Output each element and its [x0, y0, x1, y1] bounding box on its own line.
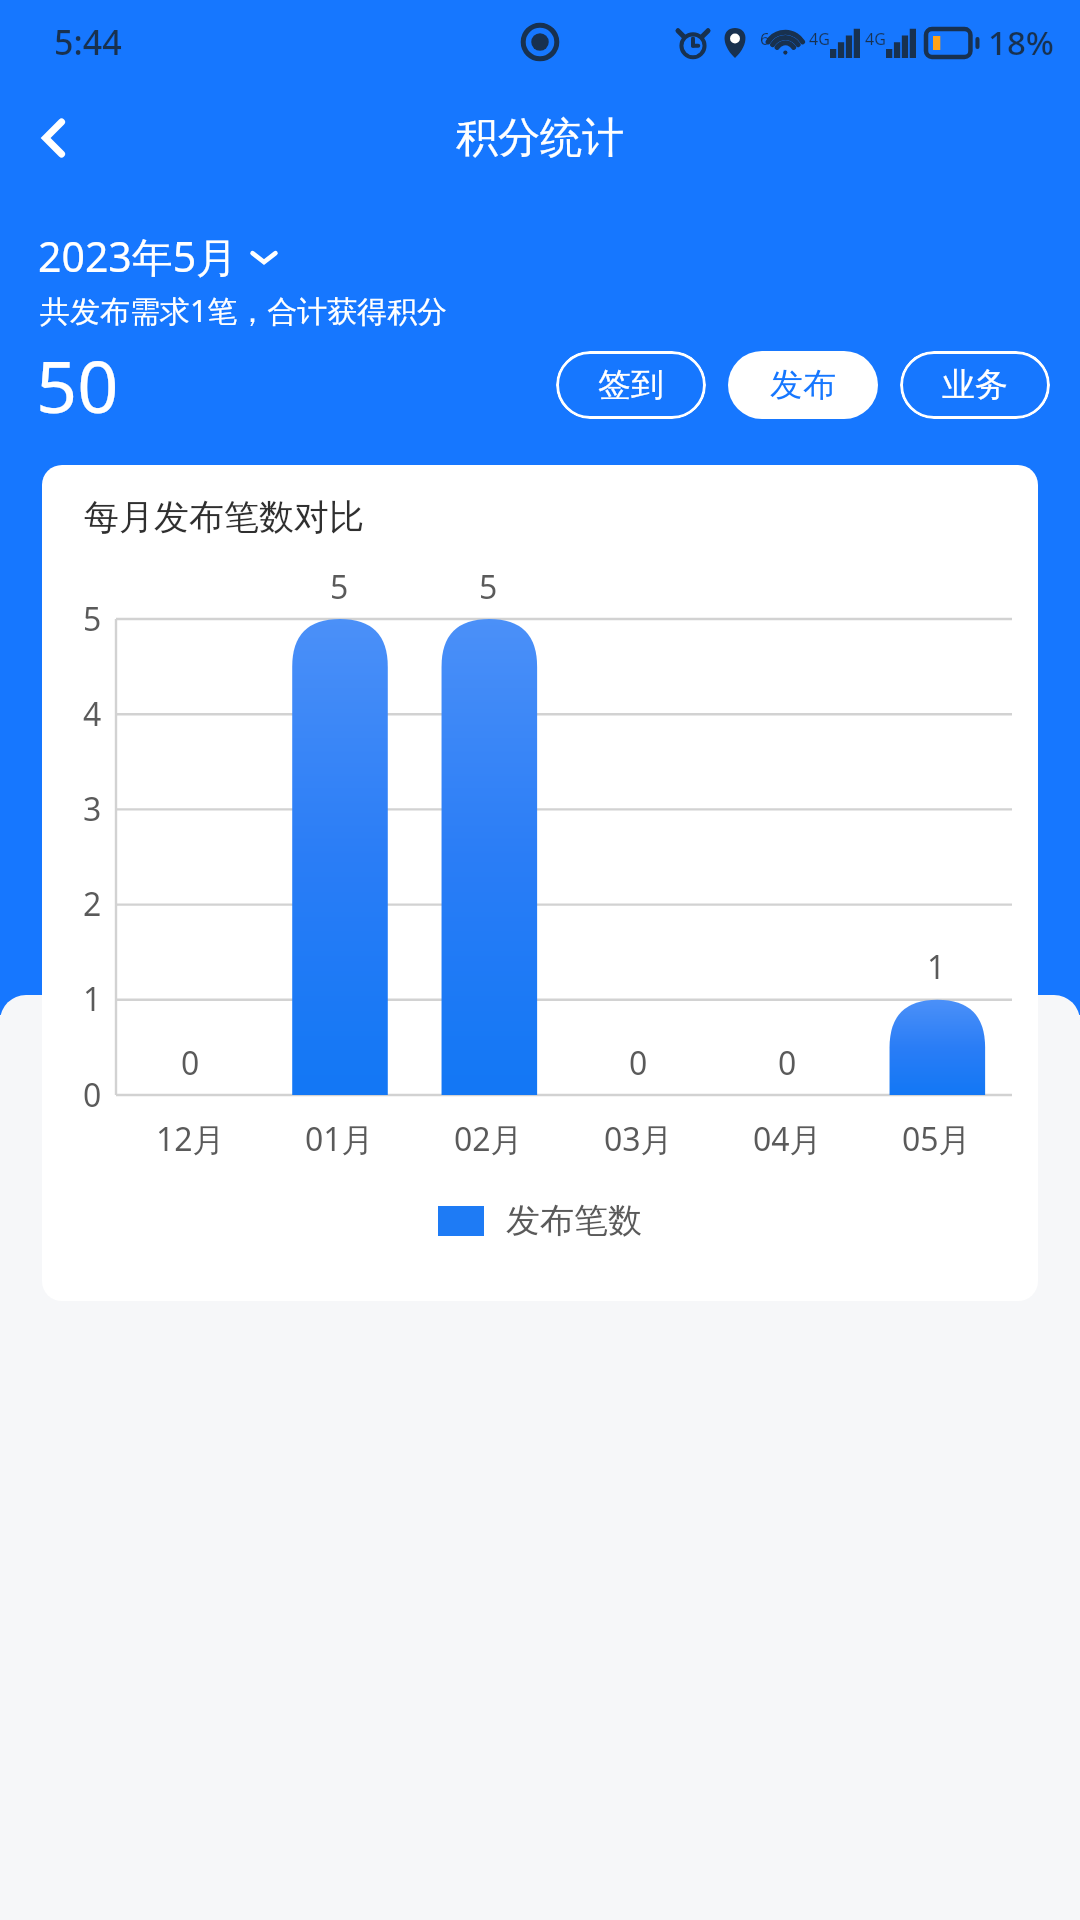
staticText: 发布笔数: [506, 1199, 642, 1242]
staticText: 02月: [454, 1117, 523, 1161]
staticText: 4G: [865, 28, 886, 50]
staticText: 积分统计: [456, 112, 624, 165]
other: 护眼模式: [519, 21, 561, 63]
staticText: 每月发布笔数对比: [84, 495, 364, 539]
button[interactable]: 2023年5月: [38, 228, 282, 284]
staticText: 共发布需求1笔，合计获得积分: [40, 290, 448, 331]
staticText: 12月: [156, 1117, 225, 1161]
staticText: 03月: [604, 1117, 673, 1161]
staticText: 01月: [305, 1117, 374, 1161]
staticText: 5:44: [54, 19, 122, 65]
staticText: 3: [83, 787, 102, 831]
staticText: 4: [83, 692, 102, 736]
staticText: 业务: [942, 364, 1008, 406]
staticText: 5: [330, 565, 349, 609]
staticText: 4G: [809, 28, 830, 50]
staticText: 50: [36, 336, 119, 434]
staticText: 发布: [770, 364, 836, 406]
staticText: 2023年5月: [38, 228, 238, 284]
staticText: 5: [479, 565, 498, 609]
staticText: 0: [778, 1041, 797, 1085]
button[interactable]: 签到: [556, 351, 706, 419]
staticText: 2: [83, 882, 102, 926]
staticText: 18%: [988, 20, 1054, 65]
staticText: 6: [760, 27, 770, 50]
staticText: 1: [927, 945, 946, 989]
button[interactable]: 业务: [900, 351, 1050, 419]
staticText: 签到: [598, 364, 664, 406]
staticText: 04月: [753, 1117, 822, 1161]
staticText: 0: [181, 1041, 200, 1085]
staticText: 0: [83, 1073, 102, 1117]
staticText: 05月: [902, 1117, 971, 1161]
staticText: 5: [83, 597, 102, 641]
button[interactable]: 发布: [728, 351, 878, 419]
button[interactable]: 返回: [14, 98, 94, 178]
staticText: 0: [629, 1041, 648, 1085]
staticText: 1: [83, 977, 102, 1021]
